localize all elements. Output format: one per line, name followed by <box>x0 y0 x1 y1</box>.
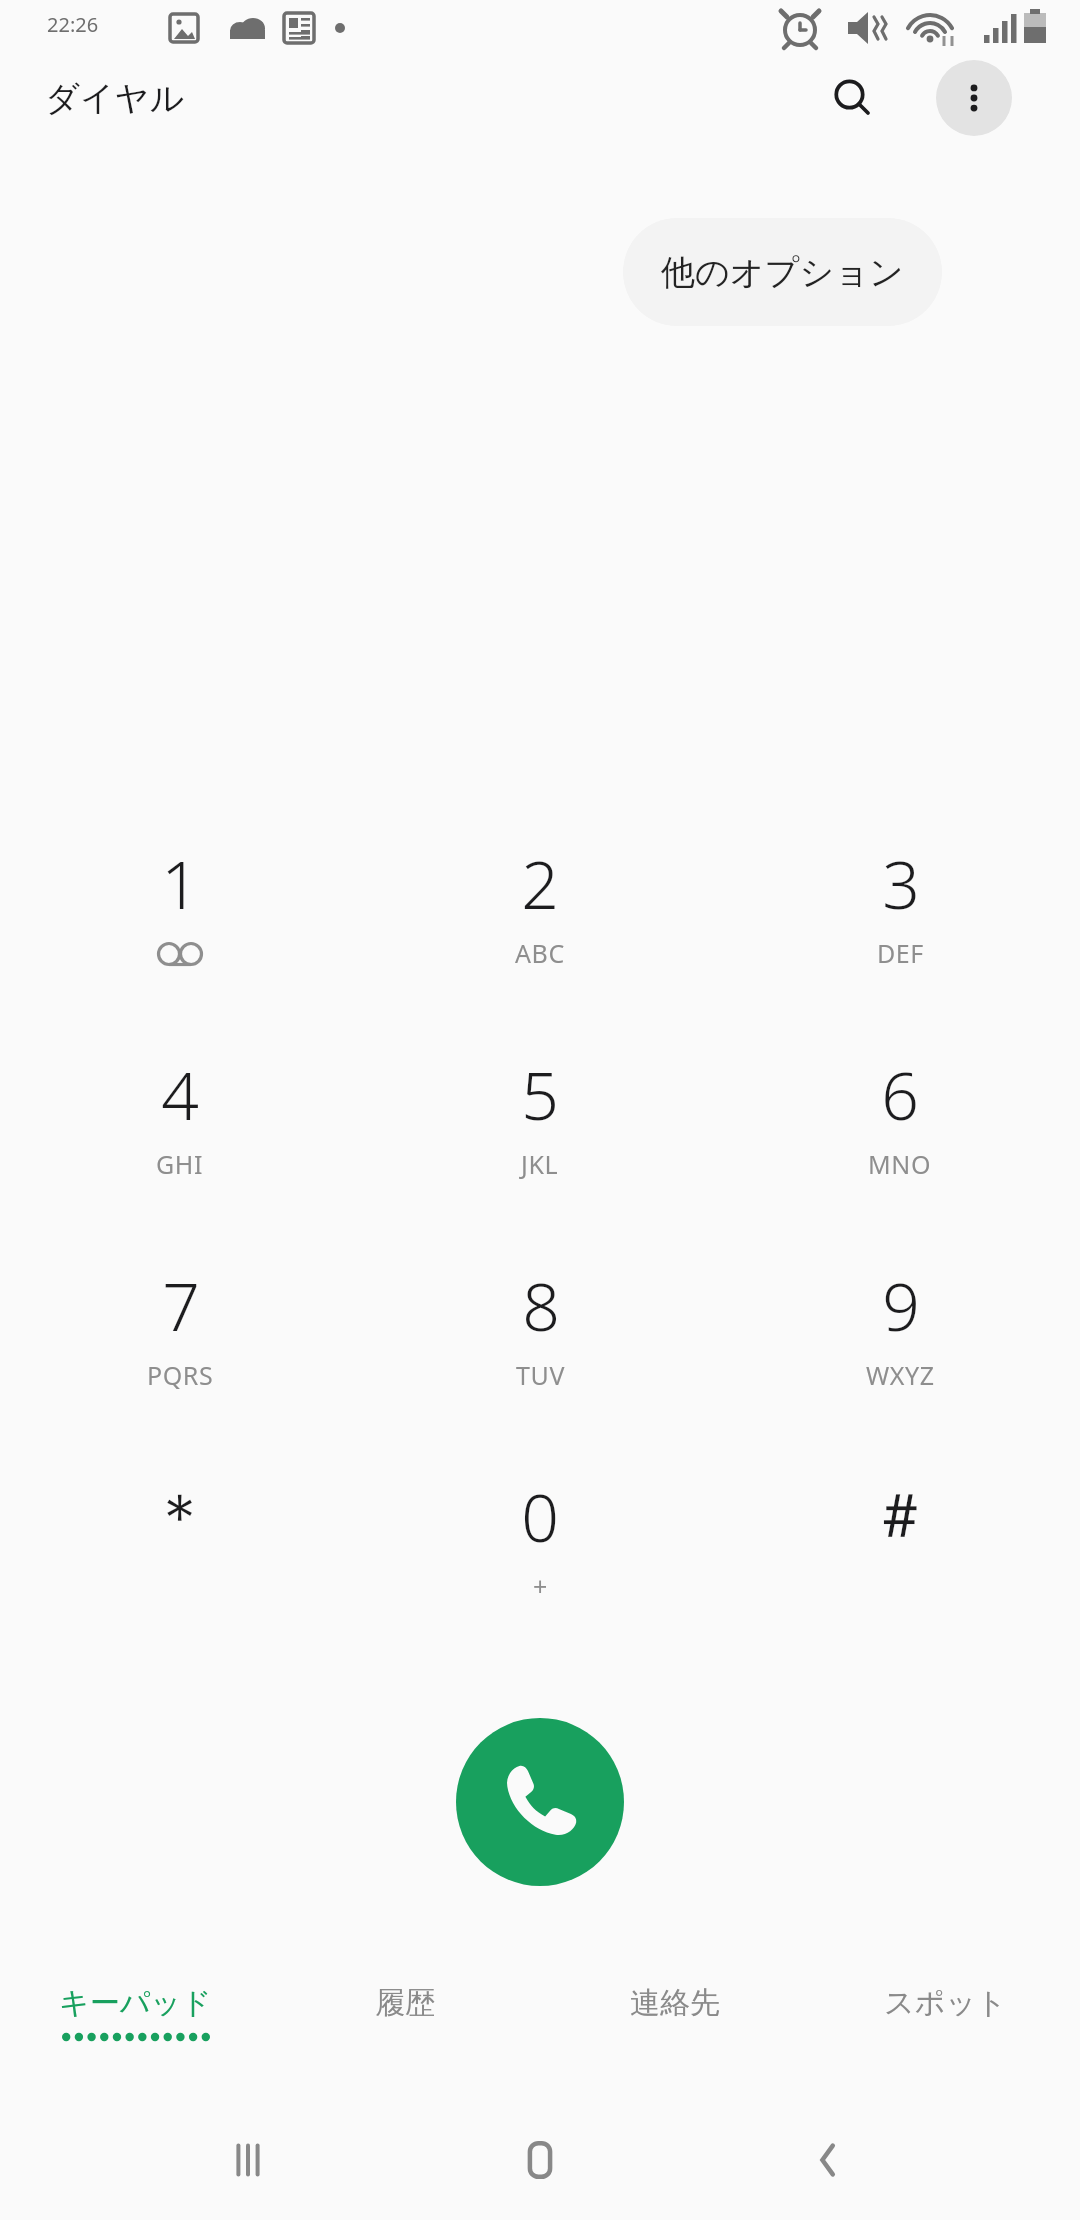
button[interactable]: Call <box>456 1718 624 1886</box>
staticText: MNO <box>868 1147 932 1181</box>
button[interactable]: 履歴 <box>270 1938 540 2070</box>
button[interactable]: 5 <box>360 1049 720 1260</box>
button[interactable]: Home <box>502 2122 578 2198</box>
staticText: スポット <box>884 1984 1007 2022</box>
staticText: JKL <box>521 1147 559 1181</box>
staticText: DEF <box>877 936 924 970</box>
staticText: 8 <box>522 1260 560 1350</box>
button[interactable]: ＃ <box>720 1471 1080 1671</box>
button[interactable]: キーパッド <box>0 1938 270 2070</box>
staticText: PQRS <box>147 1358 214 1392</box>
staticText: 2 <box>521 838 559 928</box>
button[interactable]: Search <box>817 62 889 134</box>
staticText: ダイヤル <box>45 77 185 120</box>
staticText: 9 <box>882 1260 920 1350</box>
button[interactable]: 3 <box>720 838 1080 1049</box>
staticText: 0 <box>521 1471 559 1561</box>
staticText: GHI <box>156 1147 204 1181</box>
button[interactable]: 0 <box>360 1471 720 1671</box>
button[interactable]: 6 <box>720 1049 1080 1260</box>
staticText: TUV <box>516 1358 565 1392</box>
button[interactable]: Recents <box>210 2122 286 2198</box>
staticText: 連絡先 <box>630 1984 720 2022</box>
button[interactable]: 7 <box>0 1260 360 1471</box>
staticText: ABC <box>515 936 565 970</box>
staticText: 6 <box>881 1049 919 1139</box>
staticText: 履歴 <box>375 1984 435 2022</box>
button[interactable]: 9 <box>720 1260 1080 1471</box>
button[interactable]: 2 <box>360 838 720 1049</box>
staticText: 3 <box>882 838 920 928</box>
staticText: 4 <box>161 1049 199 1139</box>
staticText: ＃ <box>869 1477 931 1555</box>
button[interactable]: ＊ <box>0 1471 360 1671</box>
staticText: 1 <box>161 838 199 928</box>
button[interactable]: More options <box>936 60 1012 136</box>
staticText: キーパッド <box>59 1984 212 2022</box>
button[interactable]: 連絡先 <box>540 1938 810 2070</box>
staticText: 22:26 <box>47 11 99 38</box>
staticText: + <box>533 1569 548 1603</box>
staticText: WXYZ <box>866 1358 935 1392</box>
staticText: ＊ <box>149 1477 211 1555</box>
staticText: 5 <box>521 1049 559 1139</box>
staticText: 7 <box>162 1260 200 1350</box>
button[interactable]: 8 <box>360 1260 720 1471</box>
button[interactable]: 1 <box>0 838 360 1049</box>
button[interactable]: Back <box>790 2122 866 2198</box>
staticText: 他のオプション <box>661 251 904 294</box>
button[interactable]: 4 <box>0 1049 360 1260</box>
button[interactable]: スポット <box>810 1938 1080 2070</box>
